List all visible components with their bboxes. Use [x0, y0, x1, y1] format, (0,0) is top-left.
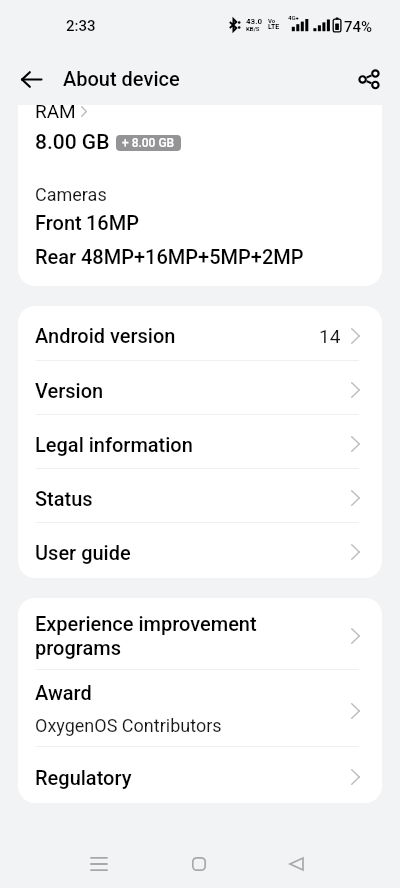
- button[interactable]: User guide: [18, 523, 382, 577]
- staticText: LTE: [268, 23, 280, 31]
- button[interactable]: Regulatory: [18, 747, 382, 803]
- staticText: Status: [35, 487, 93, 510]
- button[interactable]: Status: [18, 469, 382, 523]
- staticText: Award: [35, 681, 92, 704]
- staticText: Android version: [35, 324, 176, 347]
- button[interactable]: Back: [15, 63, 47, 95]
- staticText: Regulatory: [35, 766, 132, 789]
- staticText: 16MP: [86, 211, 139, 234]
- staticText: + 8.00 GB: [122, 136, 175, 150]
- staticText: 48MP+16MP+5MP+2MP: [81, 245, 304, 268]
- staticText: KB/S: [246, 25, 260, 32]
- button[interactable]: Recent apps: [66, 842, 131, 886]
- staticText: 43.0: [246, 17, 263, 26]
- staticText: Front: [35, 211, 82, 234]
- staticText: About device: [63, 67, 180, 90]
- button[interactable]: Share: [353, 63, 385, 95]
- staticText: Cameras: [35, 184, 107, 205]
- button[interactable]: Back: [264, 842, 329, 886]
- staticText: Rear: [35, 245, 77, 268]
- button[interactable]: Legal information: [18, 415, 382, 469]
- button[interactable]: Android version: [18, 306, 382, 361]
- button[interactable]: Version: [18, 361, 382, 415]
- staticText: 14: [319, 325, 341, 347]
- staticText: Legal information: [35, 433, 193, 456]
- button[interactable]: Award: [18, 670, 382, 747]
- staticText: Vo: [268, 17, 276, 24]
- staticText: 2:33: [66, 17, 96, 35]
- staticText: 4G+: [288, 14, 299, 21]
- staticText: Version: [35, 379, 104, 402]
- staticText: 74%: [344, 18, 373, 36]
- staticText: Experience improvement programs: [35, 612, 257, 660]
- staticText: RAM: [35, 105, 76, 122]
- staticText: 8.00 GB: [35, 130, 110, 155]
- staticText: OxygenOS Contributors: [35, 715, 222, 736]
- staticText: User guide: [35, 541, 131, 564]
- button[interactable]: Home: [166, 842, 231, 886]
- button[interactable]: Experience improvement programs: [18, 598, 382, 670]
